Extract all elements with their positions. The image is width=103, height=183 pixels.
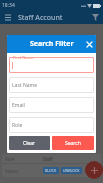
button[interactable]: BLOCK <box>43 167 59 174</box>
staticText: Search Filter <box>30 39 74 49</box>
staticText: Status <box>5 168 19 174</box>
button[interactable]: Role <box>9 117 94 133</box>
staticText: Search <box>65 140 81 147</box>
button[interactable]: First Name <box>9 57 94 73</box>
button[interactable]: Add staff <box>85 161 103 179</box>
button[interactable]: Close <box>82 37 96 51</box>
button[interactable]: Open navigation menu <box>2 12 13 23</box>
staticText: Email <box>12 102 25 109</box>
staticText: Staff <box>43 156 53 162</box>
staticText: UNBLOCK <box>63 168 80 173</box>
button[interactable]: Clear <box>9 136 50 150</box>
staticText: First Name <box>13 55 34 60</box>
button[interactable]: UNBLOCK <box>61 167 82 174</box>
staticText: Role <box>12 122 23 129</box>
button[interactable]: Status <box>2 164 101 177</box>
button[interactable]: Filter <box>90 12 101 23</box>
staticText: Clear <box>23 140 36 147</box>
staticText: 18:34 <box>2 2 15 9</box>
staticText: Last Name <box>12 82 38 89</box>
button[interactable]: Email <box>9 97 94 113</box>
button[interactable]: Search <box>52 136 94 150</box>
staticText: Staff Account <box>18 13 63 23</box>
button[interactable]: Last Name <box>9 77 94 93</box>
staticText: BLOCK <box>45 168 57 173</box>
staticText: Role <box>5 156 15 162</box>
button[interactable]: Role <box>2 154 101 163</box>
